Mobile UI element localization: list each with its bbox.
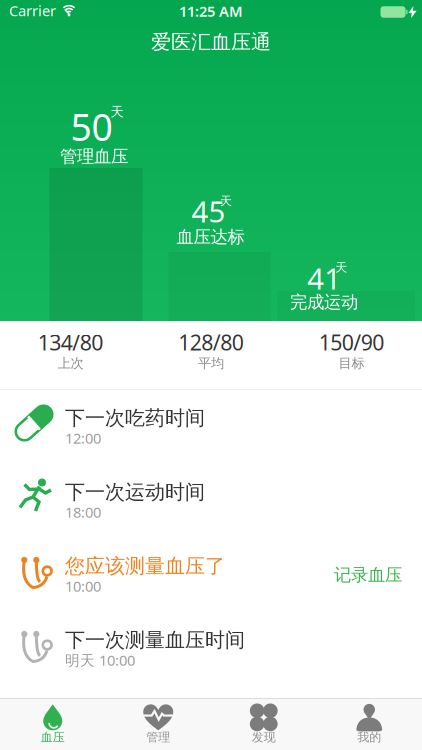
staticText: Carrier	[9, 1, 56, 20]
staticText: 平均	[198, 355, 224, 371]
staticText: 45	[191, 192, 225, 231]
button[interactable]: 您应该测量血压了	[0, 538, 422, 612]
button[interactable]: 下一次吃药时间	[0, 390, 422, 464]
staticText: 管理	[146, 730, 170, 745]
button[interactable]: 下一次运动时间	[0, 464, 422, 538]
staticText: 150/90	[319, 328, 384, 356]
button[interactable]: 我的	[316, 699, 422, 749]
button[interactable]: 血压	[0, 699, 105, 749]
staticText: 下一次吃药时间	[65, 406, 205, 430]
staticText: 50	[70, 102, 112, 151]
staticText: 134/80	[38, 328, 103, 356]
button[interactable]: 记录血压	[334, 564, 402, 586]
staticText: 完成运动	[290, 292, 358, 313]
staticText: 管理血压	[60, 146, 128, 167]
staticText: 我的	[357, 730, 381, 745]
staticText: 10:00	[65, 576, 101, 596]
staticText: 天	[220, 194, 232, 208]
staticText: 18:00	[65, 502, 101, 522]
staticText: 明天 10:00	[65, 650, 135, 670]
button[interactable]: 下一次测量血压时间	[0, 612, 422, 686]
staticText: 上次	[57, 355, 83, 371]
staticText: 128/80	[178, 328, 244, 356]
staticText: 12:00	[65, 428, 101, 448]
staticText: 41	[307, 258, 341, 297]
staticText: 天	[110, 104, 123, 120]
staticText: 血压	[41, 730, 65, 745]
staticText: 天	[335, 260, 347, 275]
staticText: 发现	[252, 730, 276, 745]
staticText: 11:25 AM	[179, 1, 243, 21]
staticText: 记录血压	[334, 564, 402, 586]
staticText: 血压达标	[176, 226, 244, 248]
button[interactable]: 管理	[105, 699, 211, 749]
button[interactable]: 发现	[211, 699, 316, 749]
staticText: 下一次测量血压时间	[65, 628, 245, 652]
staticText: 您应该测量血压了	[65, 554, 225, 578]
staticText: 下一次运动时间	[65, 480, 205, 504]
staticText: 爱医汇血压通	[151, 30, 271, 54]
staticText: 目标	[338, 355, 364, 371]
